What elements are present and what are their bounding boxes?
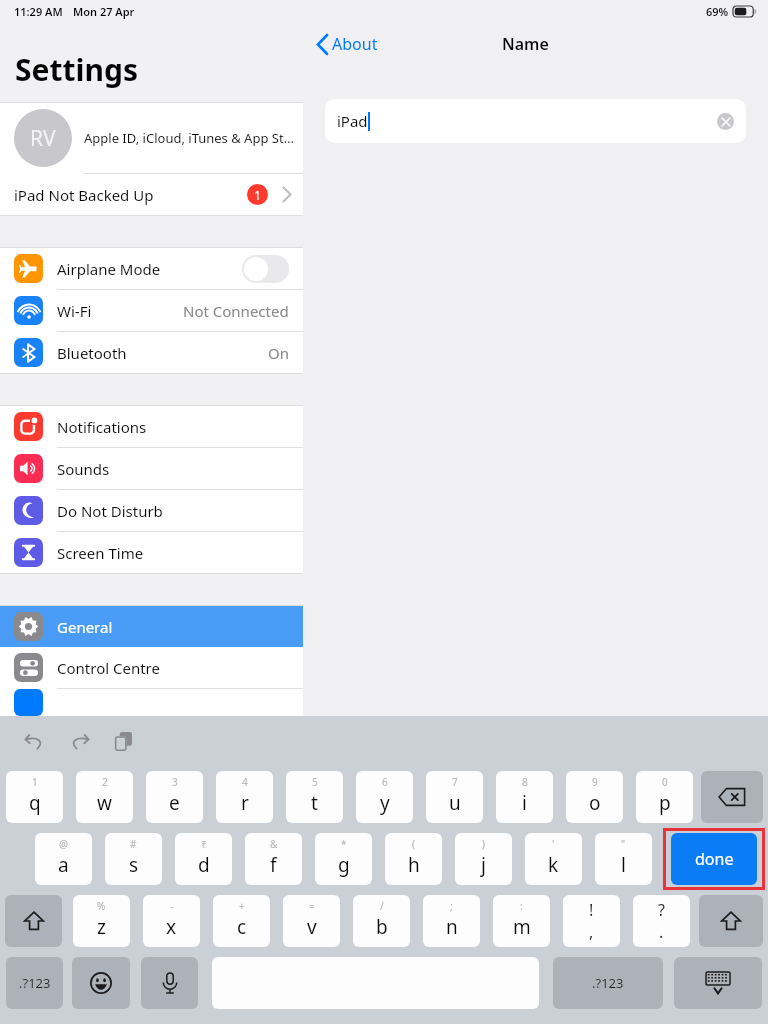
button[interactable]: Paste <box>108 726 138 756</box>
staticText: : <box>520 899 523 913</box>
staticText: Screen Time <box>57 543 144 563</box>
staticText: .?123 <box>19 974 51 992</box>
button[interactable]: Delete <box>701 771 763 823</box>
button[interactable] <box>0 689 303 716</box>
staticText: 1 <box>254 187 261 203</box>
staticText: Do Not Disturb <box>57 501 163 521</box>
button[interactable]: Shift <box>699 895 763 947</box>
button[interactable]: About <box>317 33 378 55</box>
button[interactable]: 5 <box>286 771 343 823</box>
staticText: t <box>311 790 318 816</box>
button[interactable]: 0 <box>636 771 693 823</box>
button[interactable]: Wi-Fi <box>0 290 303 331</box>
button[interactable]: 8 <box>496 771 553 823</box>
staticText: 1 <box>32 775 38 789</box>
button[interactable]: ' <box>525 833 582 885</box>
button[interactable]: General <box>0 606 303 647</box>
button[interactable]: ? <box>633 895 690 947</box>
staticText: d <box>198 852 210 878</box>
button[interactable]: + <box>213 895 270 947</box>
button[interactable]: Shift <box>5 895 62 947</box>
staticText: Airplane Mode <box>57 259 161 279</box>
staticText: Bluetooth <box>57 343 127 363</box>
button[interactable]: ! <box>563 895 620 947</box>
button[interactable]: 6 <box>356 771 413 823</box>
staticText: ? <box>658 899 665 921</box>
button[interactable]: Notifications <box>0 406 303 447</box>
button[interactable]: * <box>315 833 372 885</box>
staticText: b <box>376 914 388 940</box>
button[interactable]: 4 <box>216 771 273 823</box>
staticText: iPad <box>337 111 368 131</box>
button[interactable]: Redo <box>64 726 94 756</box>
staticText: Apple ID, iCloud, iTunes & App St... <box>84 129 295 147</box>
staticText: ) <box>482 837 485 851</box>
staticText: . <box>659 921 664 943</box>
button[interactable]: " <box>595 833 652 885</box>
button[interactable]: % <box>73 895 130 947</box>
button[interactable]: Numbers <box>553 957 663 1009</box>
button[interactable]: RV <box>0 103 303 173</box>
button[interactable]: ( <box>385 833 442 885</box>
button[interactable]: 7 <box>426 771 483 823</box>
staticText: a <box>58 852 69 878</box>
button[interactable]: Hide keyboard <box>674 957 762 1009</box>
staticText: Control Centre <box>57 658 160 678</box>
staticText: * <box>341 837 347 851</box>
staticText: i <box>522 790 527 816</box>
button[interactable]: Emoji <box>72 957 130 1009</box>
staticText: + <box>239 899 245 913</box>
button[interactable]: Control Centre <box>0 647 303 688</box>
button[interactable]: ; <box>423 895 480 947</box>
button[interactable]: Airplane Mode <box>0 248 303 289</box>
button[interactable]: / <box>353 895 410 947</box>
staticText: 4 <box>242 775 248 789</box>
staticText: r <box>241 790 249 816</box>
button[interactable]: Screen Time <box>0 532 303 573</box>
staticText: About <box>332 33 378 55</box>
button[interactable]: Numbers <box>6 957 63 1009</box>
staticText: ! <box>589 899 594 921</box>
staticText: f <box>270 852 277 878</box>
staticText: 2 <box>102 775 108 789</box>
staticText: # <box>130 837 137 851</box>
button[interactable]: Do Not Disturb <box>0 490 303 531</box>
staticText: 7 <box>452 775 458 789</box>
staticText: ₹ <box>201 837 207 851</box>
button[interactable]: Sounds <box>0 448 303 489</box>
button[interactable]: ) <box>455 833 512 885</box>
staticText: = <box>309 899 315 913</box>
button[interactable]: Dictation <box>141 957 198 1009</box>
button[interactable]: Clear text <box>717 113 734 130</box>
button[interactable]: = <box>283 895 340 947</box>
staticText: v <box>307 914 317 940</box>
button[interactable]: Undo <box>20 726 50 756</box>
button[interactable]: 1 <box>6 771 63 823</box>
button[interactable]: 3 <box>146 771 203 823</box>
button[interactable]: ₹ <box>175 833 232 885</box>
button[interactable]: Bluetooth <box>0 332 303 373</box>
button[interactable]: - <box>143 895 200 947</box>
staticText: iPad Not Backed Up <box>14 185 154 205</box>
staticText: j <box>481 852 486 878</box>
staticText: 9 <box>592 775 598 789</box>
button[interactable]: & <box>245 833 302 885</box>
staticText: Sounds <box>57 459 110 479</box>
staticText: u <box>449 790 461 816</box>
button[interactable]: iPad Not Backed Up <box>0 174 303 215</box>
staticText: o <box>589 790 601 816</box>
staticText: , <box>589 921 594 943</box>
button[interactable]: 2 <box>76 771 133 823</box>
staticText: ; <box>450 899 453 913</box>
button[interactable]: : <box>493 895 550 947</box>
staticText: m <box>513 914 531 940</box>
button[interactable]: done <box>671 833 757 885</box>
staticText: On <box>268 343 289 363</box>
button[interactable]: 9 <box>566 771 623 823</box>
button[interactable]: iPad <box>325 99 746 143</box>
button[interactable]: @ <box>35 833 92 885</box>
staticText: Settings <box>15 49 138 90</box>
button[interactable] <box>242 255 289 283</box>
button[interactable]: # <box>105 833 162 885</box>
